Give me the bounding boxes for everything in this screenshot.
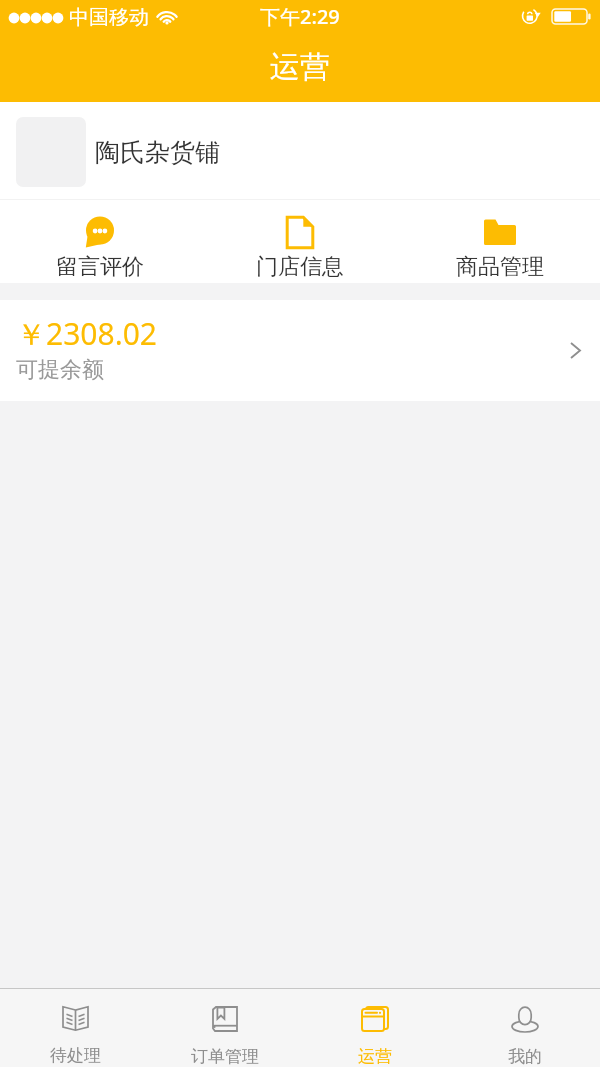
button[interactable]: 订单管理 — [150, 989, 300, 1067]
button[interactable]: 我的 — [450, 989, 600, 1067]
staticText: 下午2:29 — [260, 3, 340, 30]
staticText: 待处理 — [50, 1045, 101, 1066]
button[interactable]: 运营 — [300, 989, 450, 1067]
staticText: 订单管理 — [191, 1046, 259, 1067]
staticText: 中国移动 — [69, 5, 149, 30]
button[interactable]: 商品管理 — [400, 200, 600, 283]
staticText: 运营 — [270, 48, 330, 86]
staticText: 商品管理 — [456, 253, 544, 281]
staticText: ￥2308.02 — [16, 313, 157, 354]
button[interactable]: 门店信息 — [200, 200, 400, 283]
staticText: 运营 — [358, 1046, 392, 1067]
staticText: 可提余额 — [16, 356, 104, 384]
button[interactable]: 留言评价 — [0, 200, 200, 283]
button[interactable]: ￥2308.02 — [0, 300, 600, 401]
staticText: 陶氏杂货铺 — [95, 137, 220, 168]
staticText: 门店信息 — [256, 253, 344, 281]
staticText: 留言评价 — [56, 253, 144, 281]
button[interactable]: 陶氏杂货铺 — [0, 102, 600, 199]
other: Details — [570, 342, 581, 359]
staticText: 我的 — [508, 1046, 542, 1067]
button[interactable]: 待处理 — [0, 989, 150, 1067]
